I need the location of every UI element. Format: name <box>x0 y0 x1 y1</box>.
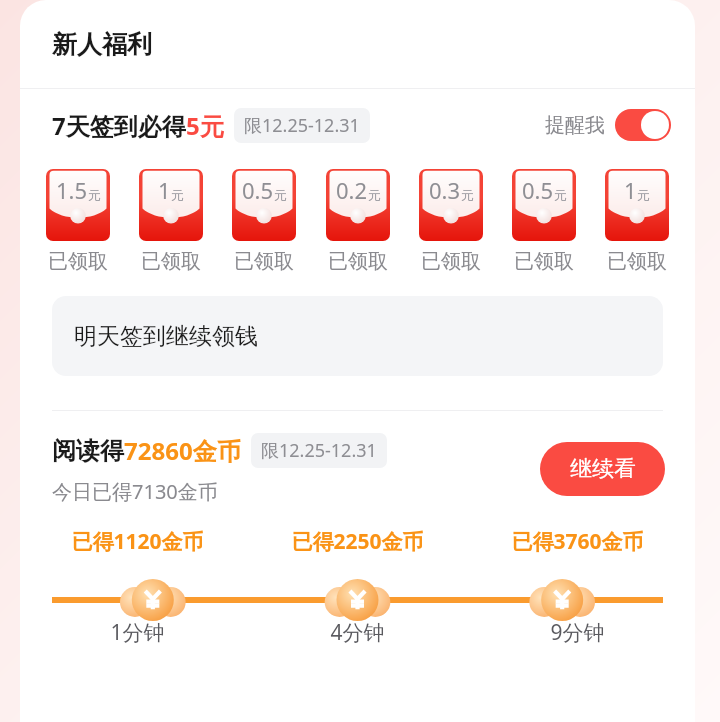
button[interactable]: 0.5 <box>232 169 296 274</box>
staticText: 元 <box>171 187 184 203</box>
button[interactable]: 已得2250金币 <box>247 527 467 647</box>
staticText: 已领取 <box>328 249 388 274</box>
staticText: 已领取 <box>141 249 201 274</box>
staticText: 0.2 <box>336 175 368 205</box>
staticText: 阅读得 <box>52 436 124 466</box>
staticText: 已领取 <box>48 249 108 274</box>
button[interactable]: 明天签到继续领钱 <box>52 296 663 376</box>
button[interactable]: 继续看 <box>540 442 665 496</box>
staticText: 今日已得7130金币 <box>52 478 218 505</box>
staticText: 限12.25-12.31 <box>261 438 377 463</box>
staticText: 1.5 <box>56 175 88 205</box>
button[interactable]: 1.5 <box>46 169 110 274</box>
staticText: 0.5 <box>242 175 274 205</box>
staticText: 9分钟 <box>550 618 605 647</box>
button[interactable]: 已得3760金币 <box>467 527 687 647</box>
button[interactable]: 1 <box>605 169 669 274</box>
button[interactable]: 0.5 <box>512 169 576 274</box>
button[interactable]: 提醒我 <box>545 109 671 141</box>
button[interactable]: 0.2 <box>326 169 390 274</box>
staticText: 元 <box>461 187 474 203</box>
staticText: 元 <box>88 187 101 203</box>
other: Reminder toggle on <box>615 109 671 141</box>
staticText: 继续看 <box>570 455 636 483</box>
staticText: 已得3760金币 <box>511 527 644 556</box>
staticText: 新人福利 <box>52 29 152 60</box>
staticText: 1分钟 <box>110 618 165 647</box>
staticText: 元 <box>368 187 381 203</box>
staticText: 元 <box>274 187 287 203</box>
staticText: 已领取 <box>607 249 667 274</box>
staticText: 已领取 <box>234 249 294 274</box>
staticText: 已领取 <box>421 249 481 274</box>
staticText: 已得2250金币 <box>291 527 424 556</box>
staticText: 0.3 <box>429 175 461 205</box>
staticText: 限12.25-12.31 <box>244 113 360 138</box>
button[interactable]: 已得1120金币 <box>28 527 247 647</box>
staticText: 7天签到必得 <box>52 109 186 142</box>
staticText: 72860金币 <box>124 434 241 467</box>
button[interactable]: 1 <box>139 169 203 274</box>
staticText: 0.5 <box>522 175 554 205</box>
button[interactable]: 0.3 <box>419 169 483 274</box>
staticText: 元 <box>637 187 650 203</box>
staticText: 已领取 <box>514 249 574 274</box>
staticText: 4分钟 <box>330 618 385 647</box>
staticText: 1 <box>158 175 171 205</box>
staticText: 明天签到继续领钱 <box>74 322 258 351</box>
staticText: 5元 <box>186 109 224 142</box>
staticText: 已得1120金币 <box>71 527 204 556</box>
staticText: 1 <box>624 175 637 205</box>
staticText: 元 <box>554 187 567 203</box>
staticText: 提醒我 <box>545 113 605 138</box>
